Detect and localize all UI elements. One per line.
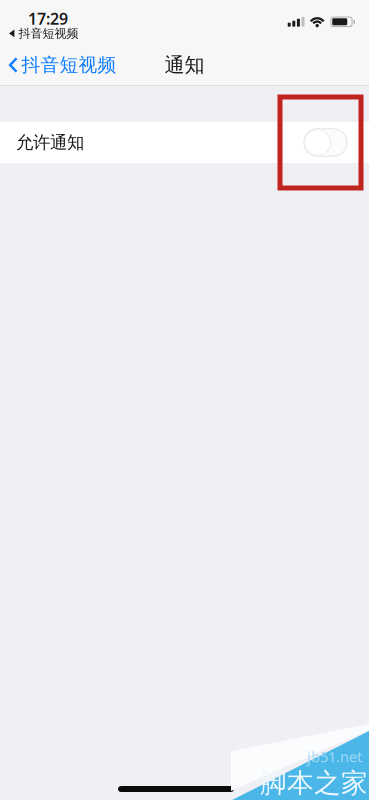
staticText: 脚本之家 xyxy=(260,767,368,799)
staticText: 17:29 xyxy=(28,8,68,29)
staticText: 抖音短视频 xyxy=(21,53,116,76)
button[interactable]: 抖音短视频 xyxy=(0,26,79,40)
button[interactable]: 抖音短视频 xyxy=(0,47,116,82)
staticText: jb51.net xyxy=(307,747,362,766)
staticText: 允许通知 xyxy=(16,132,84,153)
staticText: 抖音短视频 xyxy=(19,26,79,41)
button[interactable]: 允许通知 xyxy=(0,122,369,163)
staticText: 通知 xyxy=(164,53,204,77)
